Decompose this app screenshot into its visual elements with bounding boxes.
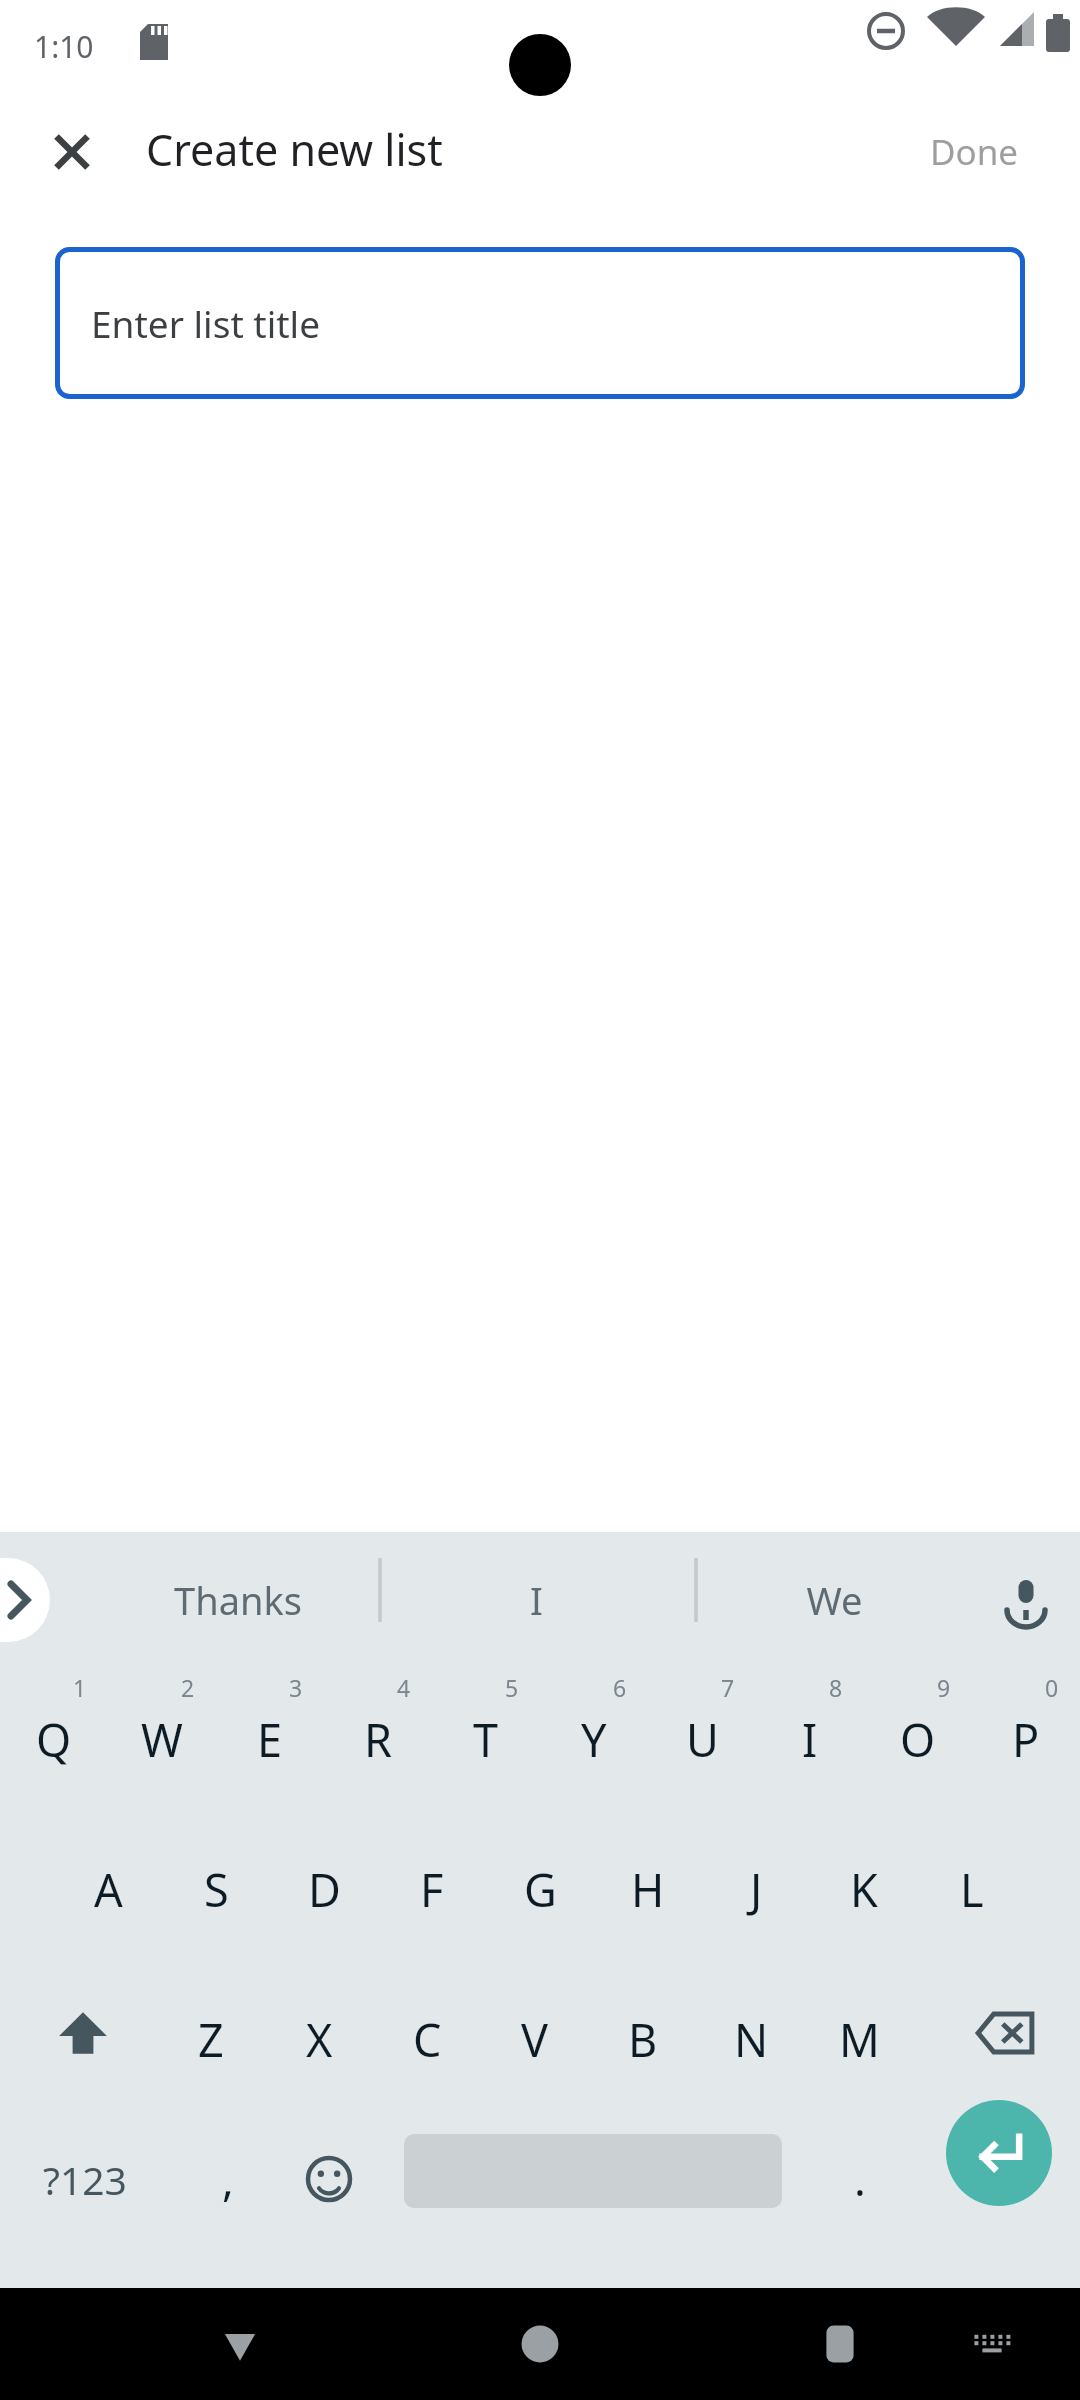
button[interactable]: D [270, 1808, 378, 1958]
button[interactable]: F [378, 1808, 486, 1958]
button[interactable]: J [702, 1808, 810, 1958]
staticText: Thanks [174, 1574, 302, 1626]
staticText: Z [198, 2009, 224, 2070]
staticText: A [94, 1859, 123, 1920]
staticText: I [530, 1574, 543, 1626]
button[interactable]: We [709, 1546, 959, 1654]
button[interactable]: Switch keyboard [946, 2300, 1038, 2392]
button[interactable]: Home [490, 2294, 590, 2394]
staticText: 3 [289, 1672, 303, 1703]
button[interactable]: 2 [108, 1658, 216, 1808]
staticText: C [413, 2009, 442, 2070]
button[interactable]: 7 [648, 1658, 756, 1808]
button[interactable]: 3 [216, 1658, 324, 1808]
staticText: 9 [937, 1672, 951, 1703]
staticText: P [1012, 1709, 1040, 1770]
button[interactable]: 6 [540, 1658, 648, 1808]
staticText: L [960, 1859, 984, 1920]
staticText: Y [581, 1709, 607, 1770]
staticText: 2 [181, 1672, 195, 1703]
staticText: , [222, 2149, 234, 2209]
staticText: F [420, 1859, 444, 1920]
button[interactable]: Enter [946, 2100, 1052, 2206]
button[interactable]: G [486, 1808, 594, 1958]
staticText: U [686, 1709, 719, 1770]
button[interactable]: C [373, 1958, 481, 2108]
button[interactable]: ?123 [10, 2104, 160, 2254]
staticText: X [306, 2009, 333, 2070]
button[interactable]: X [265, 1958, 373, 2108]
staticText: H [631, 1859, 665, 1920]
button[interactable]: Close [28, 108, 116, 196]
button[interactable]: 0 [972, 1658, 1080, 1808]
button[interactable]: Shift [8, 1958, 158, 2108]
staticText: T [473, 1709, 499, 1770]
button[interactable]: Emoji [264, 2104, 394, 2254]
button[interactable]: V [481, 1958, 589, 2108]
button[interactable]: Backspace [930, 1958, 1080, 2108]
staticText: 6 [613, 1672, 627, 1703]
button[interactable]: 9 [864, 1658, 972, 1808]
staticText: K [850, 1859, 878, 1920]
staticText: O [900, 1709, 936, 1770]
button[interactable]: 5 [432, 1658, 540, 1808]
staticText: 1:10 [34, 26, 94, 67]
staticText: 8 [829, 1672, 843, 1703]
button[interactable]: L [918, 1808, 1026, 1958]
button[interactable]: Expand toolbar [0, 1558, 50, 1642]
button[interactable]: Z [157, 1958, 265, 2108]
staticText: 7 [721, 1672, 735, 1703]
button[interactable]: I [411, 1546, 661, 1654]
button[interactable]: Enter list title [55, 247, 1025, 399]
button[interactable]: Voice input [980, 1554, 1072, 1646]
button[interactable]: 1 [0, 1658, 108, 1808]
staticText: S [204, 1859, 229, 1920]
staticText: 5 [505, 1672, 519, 1703]
staticText: We [806, 1574, 863, 1626]
staticText: 0 [1045, 1672, 1059, 1703]
staticText: ?123 [43, 2153, 127, 2206]
staticText: N [734, 2009, 769, 2070]
button[interactable]: 4 [324, 1658, 432, 1808]
button[interactable]: Recent apps [790, 2294, 890, 2394]
staticText: G [524, 1859, 557, 1920]
staticText: V [521, 2009, 549, 2070]
staticText: I [802, 1709, 818, 1770]
staticText: M [839, 2009, 880, 2070]
button[interactable]: S [162, 1808, 270, 1958]
staticText: Done [930, 128, 1019, 176]
staticText: J [750, 1859, 763, 1920]
button[interactable]: Back [190, 2294, 290, 2394]
button[interactable]: , [168, 2104, 288, 2254]
button[interactable]: K [810, 1808, 918, 1958]
button[interactable]: . [800, 2104, 920, 2254]
staticText: D [308, 1859, 341, 1920]
staticText: Create new list [146, 120, 443, 179]
staticText: 4 [397, 1672, 411, 1703]
staticText: R [364, 1709, 392, 1770]
staticText: Q [36, 1709, 72, 1770]
button[interactable]: B [589, 1958, 697, 2108]
button[interactable]: Thanks [113, 1546, 363, 1654]
staticText: B [628, 2009, 658, 2070]
button[interactable]: H [594, 1808, 702, 1958]
staticText: 1 [73, 1672, 87, 1703]
staticText: Enter list title [91, 298, 321, 348]
button[interactable]: 8 [756, 1658, 864, 1808]
staticText: W [141, 1709, 183, 1770]
button[interactable]: M [805, 1958, 913, 2108]
staticText: E [257, 1709, 283, 1770]
button[interactable]: N [697, 1958, 805, 2108]
staticText: . [854, 2149, 866, 2209]
button[interactable]: A [54, 1808, 162, 1958]
button[interactable]: Done [930, 110, 1070, 194]
